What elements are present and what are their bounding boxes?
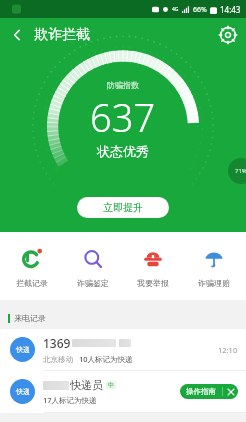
- staticText: 4G: [172, 6, 179, 13]
- button[interactable]: 快递: [0, 329, 246, 370]
- staticText: 来电记录: [14, 313, 46, 323]
- staticText: 快递员: [70, 378, 103, 392]
- button[interactable]: 操作指南: [180, 384, 238, 399]
- staticText: 我要举报: [137, 278, 169, 288]
- button[interactable]: 快递: [0, 371, 246, 412]
- staticText: 66%: [193, 5, 207, 15]
- button[interactable]: 诈骗理赔: [186, 244, 242, 290]
- staticText: 10人标记为快递: [79, 354, 133, 364]
- staticText: 17人标记为快递: [43, 395, 97, 405]
- staticText: 71%: [235, 167, 246, 175]
- staticText: 状态优秀: [97, 143, 149, 159]
- button[interactable]: Close: [223, 384, 238, 399]
- staticText: 诈骗鉴定: [77, 278, 109, 288]
- staticText: 快递: [16, 387, 30, 396]
- button[interactable]: Back: [0, 18, 34, 52]
- staticText: 立即提升: [103, 201, 143, 214]
- staticText: 操作指南: [186, 387, 216, 396]
- button[interactable]: 我要举报: [125, 244, 181, 290]
- staticText: 防骗指数: [107, 80, 139, 90]
- staticText: 拦截记录: [16, 278, 48, 288]
- staticText: 14:43: [220, 4, 241, 15]
- staticText: 637: [90, 91, 156, 143]
- button[interactable]: 诈骗鉴定: [65, 244, 121, 290]
- staticText: 快递: [16, 345, 30, 354]
- staticText: 诈骗理赔: [198, 278, 230, 288]
- staticText: 中: [108, 381, 114, 389]
- staticText: 欺诈拦截: [34, 26, 90, 44]
- staticText: 1369: [43, 335, 71, 351]
- button[interactable]: 立即提升: [77, 197, 169, 218]
- staticText: 北京移动: [43, 355, 73, 364]
- button[interactable]: 拦截记录: [4, 244, 60, 290]
- button[interactable]: Battery 71 percent: [228, 158, 246, 184]
- staticText: 12:10: [218, 345, 238, 355]
- button[interactable]: Settings: [210, 18, 246, 52]
